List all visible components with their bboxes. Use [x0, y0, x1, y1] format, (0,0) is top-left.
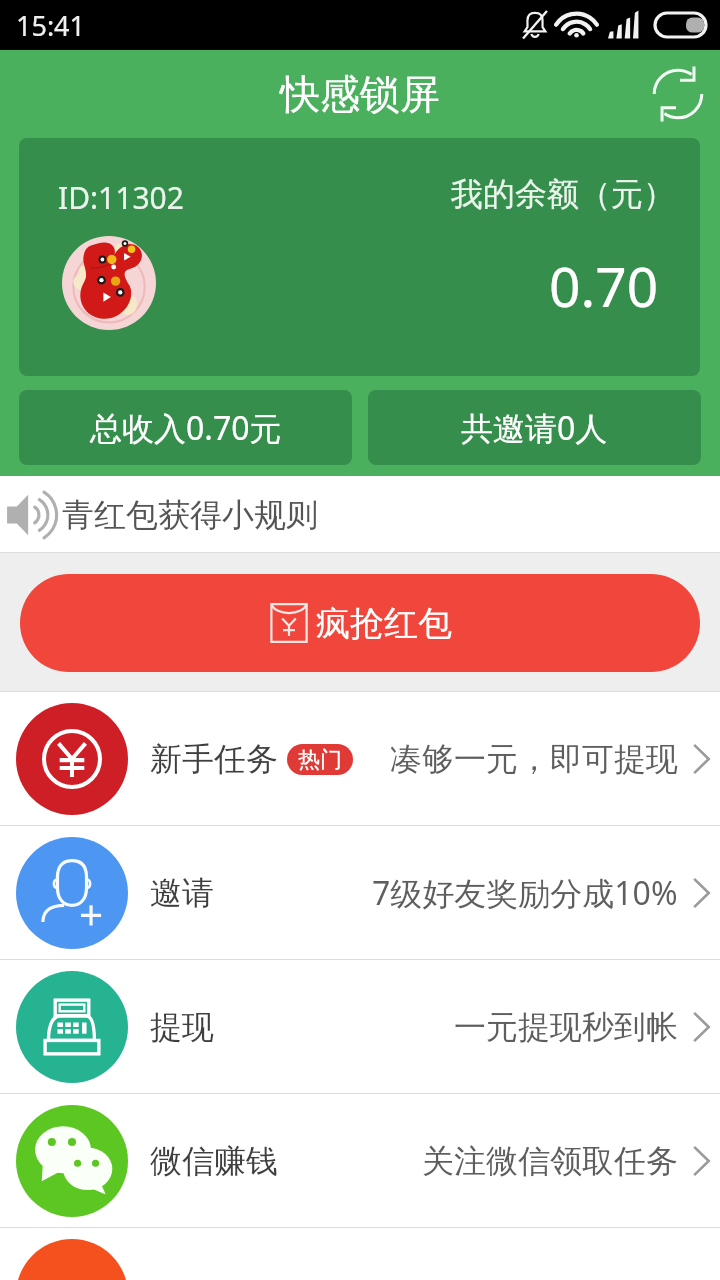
- staticText: ID:11302: [58, 177, 184, 218]
- staticText: 15:41: [16, 7, 86, 44]
- staticText: 0.70: [549, 248, 659, 323]
- button[interactable]: Refresh: [646, 62, 710, 126]
- staticText: 一元提现秒到帐: [454, 1007, 678, 1047]
- staticText: 关注微信领取任务: [422, 1141, 678, 1181]
- button[interactable]: 新手任务: [0, 692, 720, 826]
- button[interactable]: ID:11302: [19, 138, 700, 376]
- staticText: 热门: [298, 746, 342, 774]
- button[interactable]: [0, 1228, 720, 1280]
- button[interactable]: 邀请: [0, 826, 720, 960]
- staticText: 凑够一元，即可提现: [390, 739, 678, 779]
- staticText: 微信赚钱: [150, 1141, 278, 1181]
- button[interactable]: 疯抢红包: [20, 574, 700, 672]
- staticText: 快感锁屏: [280, 69, 440, 119]
- staticText: 总收入0.70元: [90, 406, 282, 450]
- staticText: 我的余额（元）: [451, 174, 675, 214]
- staticText: 共邀请0人: [461, 406, 608, 450]
- button[interactable]: 总收入0.70元: [19, 390, 352, 465]
- staticText: 7级好友奖励分成10%: [372, 871, 678, 915]
- staticText: 新手任务: [150, 739, 278, 779]
- button[interactable]: 青红包获得小规则: [0, 476, 720, 553]
- button[interactable]: 微信赚钱: [0, 1094, 720, 1228]
- staticText: 邀请: [150, 873, 214, 913]
- staticText: 疯抢红包: [316, 602, 452, 645]
- button[interactable]: 共邀请0人: [368, 390, 701, 465]
- staticText: 青红包获得小规则: [62, 495, 318, 535]
- button[interactable]: 提现: [0, 960, 720, 1094]
- staticText: 提现: [150, 1007, 214, 1047]
